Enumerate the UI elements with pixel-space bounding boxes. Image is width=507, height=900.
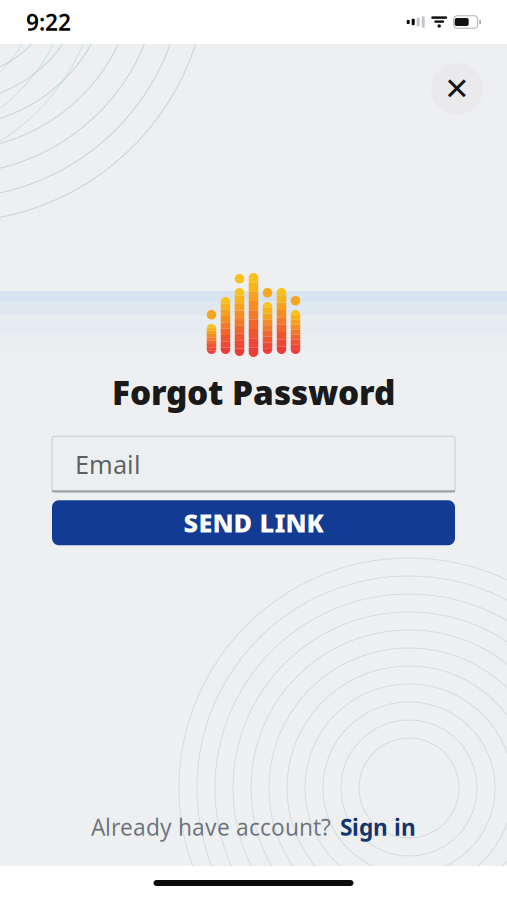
staticText: Email xyxy=(75,447,141,481)
button[interactable]: SEND LINK xyxy=(52,500,455,545)
staticText: Forgot Password xyxy=(112,370,395,414)
button[interactable]: Close xyxy=(431,63,483,115)
button[interactable]: Already have account? xyxy=(91,812,416,842)
button[interactable]: Email xyxy=(52,436,455,492)
staticText: 9:22 xyxy=(26,7,71,37)
staticText: Sign in xyxy=(340,812,416,842)
staticText: ✕ xyxy=(444,72,470,106)
staticText: Already have account? xyxy=(91,812,331,842)
staticText: SEND LINK xyxy=(183,506,323,539)
